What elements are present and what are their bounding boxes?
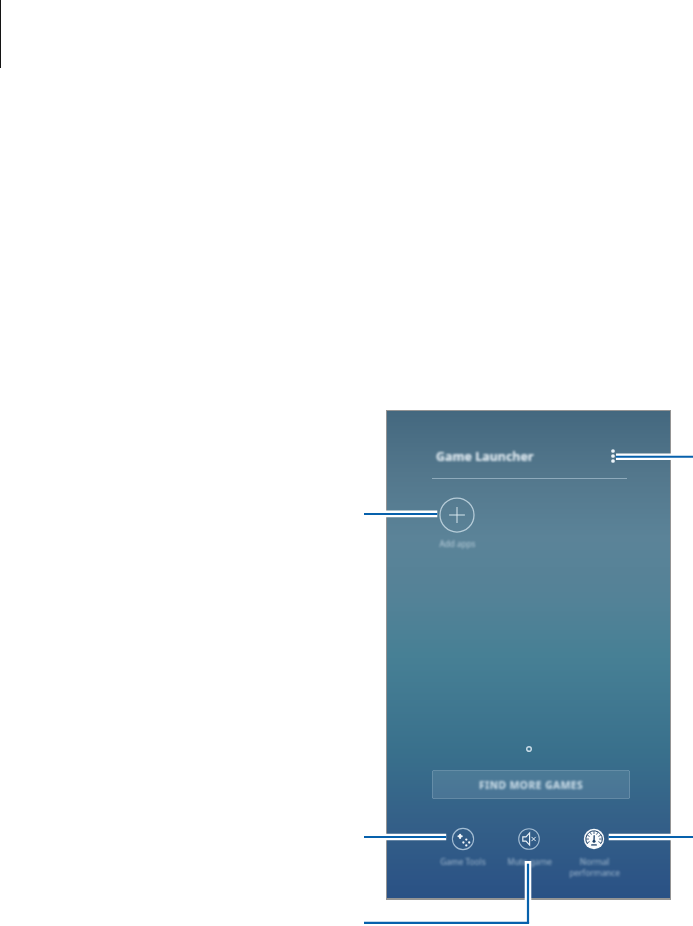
button[interactable]: Normal performance [562, 821, 626, 883]
staticText: Game Launcher [436, 448, 534, 465]
button[interactable]: Add apps [434, 492, 480, 538]
staticText: Game Tools [440, 856, 486, 867]
button[interactable]: Game Launcher [436, 446, 534, 467]
button[interactable]: Mute game [497, 821, 561, 883]
staticText: Mute game [507, 856, 552, 867]
staticText: FIND MORE GAMES [479, 778, 584, 792]
button[interactable]: Game Tools [431, 821, 495, 883]
button[interactable]: More options [599, 442, 627, 470]
staticText: Normal performance [569, 856, 620, 879]
button[interactable]: FIND MORE GAMES [432, 770, 630, 799]
staticText: Add apps [439, 538, 476, 549]
